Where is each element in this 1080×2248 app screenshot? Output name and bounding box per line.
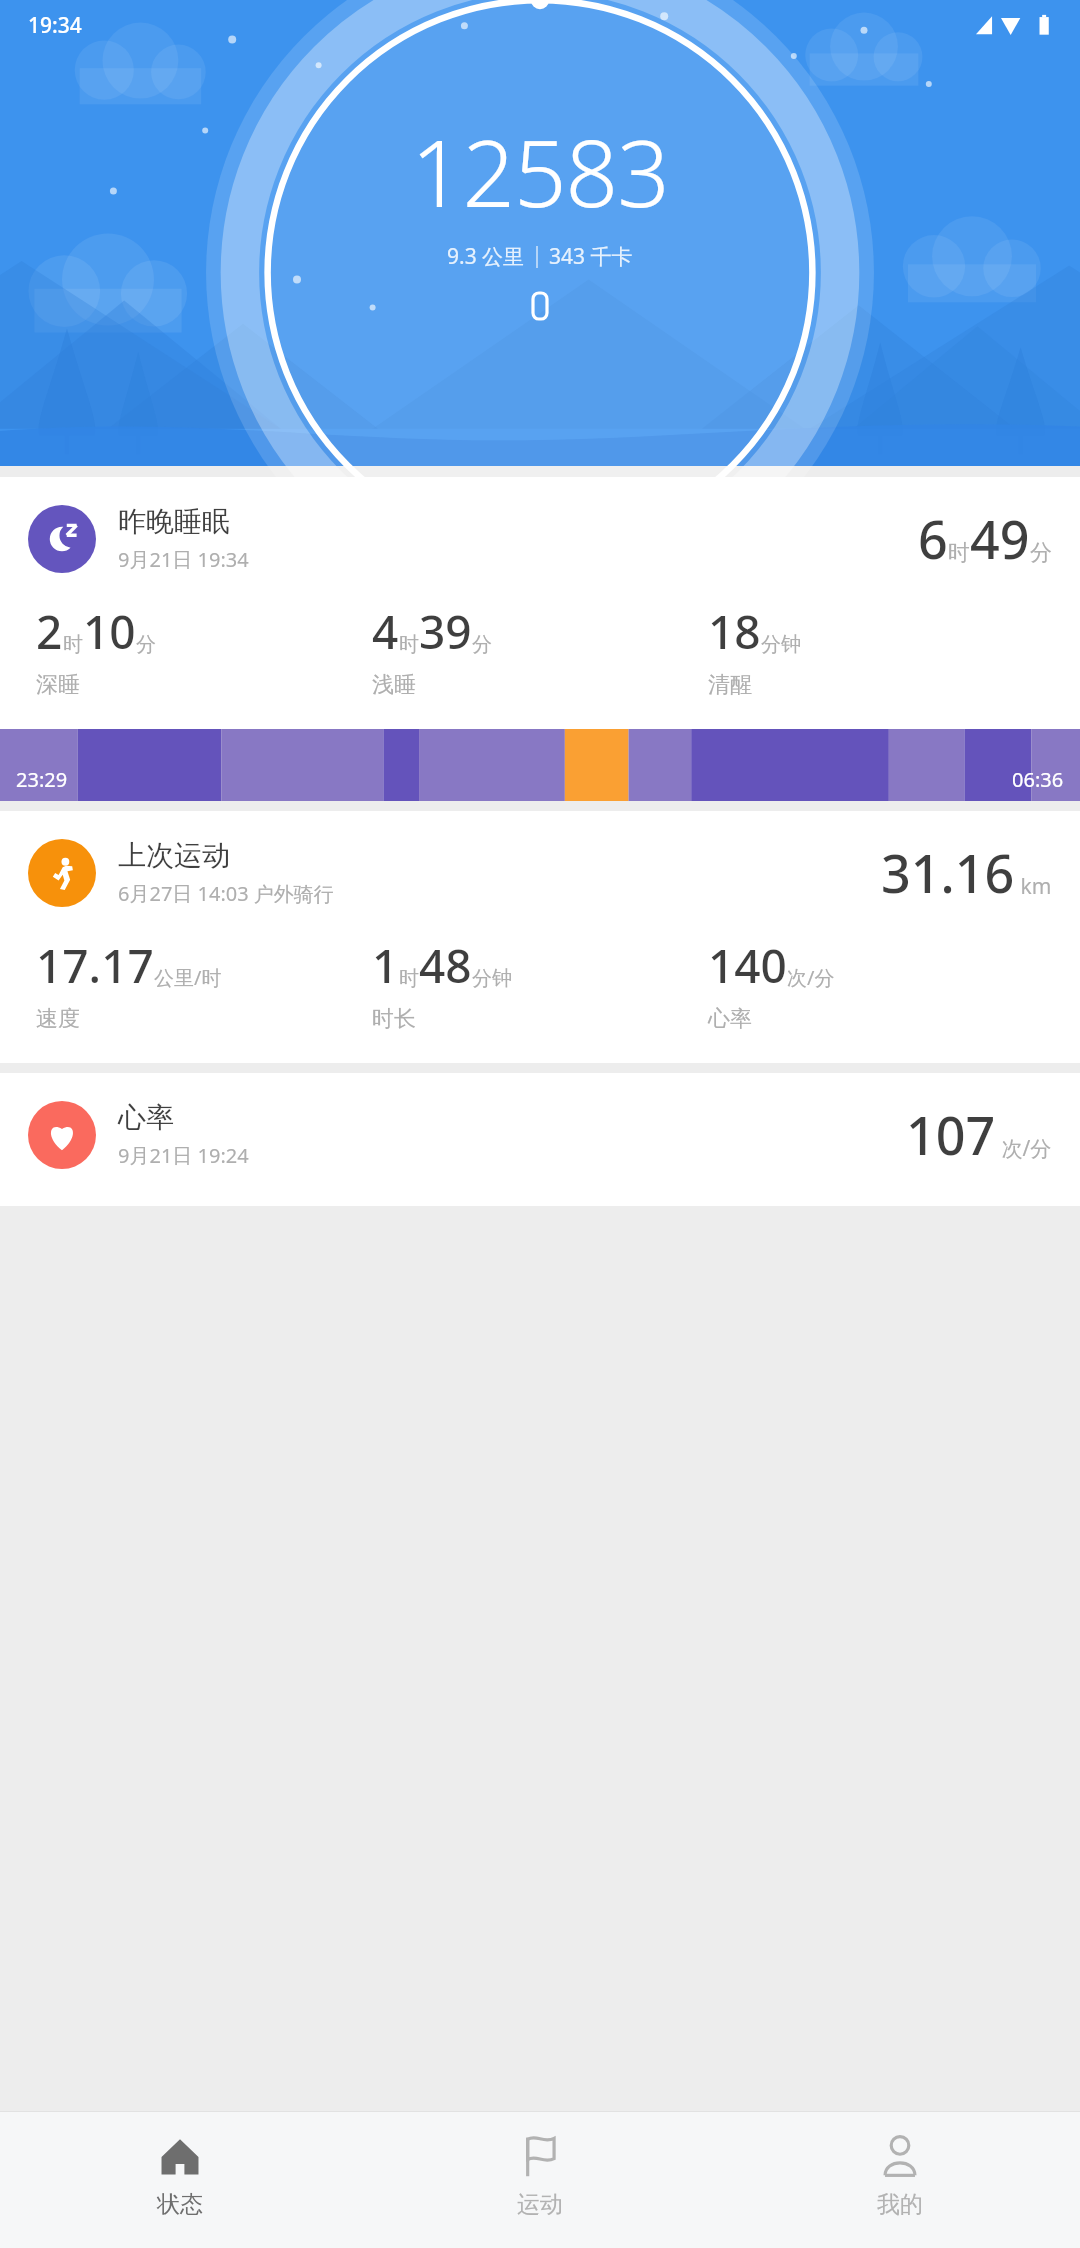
staticText: 清醒 xyxy=(708,671,752,699)
staticText: 运动 xyxy=(517,2190,563,2219)
staticText: 时 xyxy=(948,539,970,567)
staticText: 12583 xyxy=(411,109,669,234)
staticText: 时 xyxy=(399,632,419,657)
staticText: 1 xyxy=(372,934,399,997)
staticText: 6月27日 14:03 户外骑行 xyxy=(118,880,334,907)
staticText: 107 xyxy=(906,1099,996,1170)
staticText: 17.17 xyxy=(36,934,154,997)
staticText: 时 xyxy=(63,632,83,657)
staticText: 浅睡 xyxy=(372,671,416,699)
staticText: 9月21日 19:24 xyxy=(118,1142,249,1169)
staticText: 06:36 xyxy=(1012,766,1064,793)
staticText: 公里/时 xyxy=(154,964,222,991)
staticText: 分钟 xyxy=(761,632,801,657)
button[interactable]: 我的 xyxy=(720,2112,1080,2248)
staticText: 140 xyxy=(708,934,787,997)
staticText: 9.3 公里 xyxy=(447,242,525,271)
button[interactable]: 状态 xyxy=(0,2112,360,2248)
staticText: 48 xyxy=(419,934,472,997)
staticText: 2 xyxy=(36,600,63,663)
staticText: 19:34 xyxy=(28,11,82,40)
staticText: 次/分 xyxy=(787,964,835,991)
button[interactable]: 运动 xyxy=(360,2112,720,2248)
button[interactable]: 心率 xyxy=(0,1073,1080,1184)
button[interactable]: 上次运动 xyxy=(0,811,1080,922)
staticText: 23:29 xyxy=(16,766,68,793)
staticText: 分 xyxy=(136,632,156,657)
staticText: 343 千卡 xyxy=(549,242,633,271)
staticText: 分 xyxy=(472,632,492,657)
staticText: 分 xyxy=(1030,539,1052,567)
other: Connected band xyxy=(533,293,547,319)
staticText: 次/分 xyxy=(996,1134,1052,1163)
staticText: 10 xyxy=(83,600,136,663)
staticText: km xyxy=(1015,872,1052,901)
staticText: 深睡 xyxy=(36,671,80,699)
staticText: 我的 xyxy=(877,2190,923,2219)
staticText: 4 xyxy=(372,600,399,663)
staticText: 心率 xyxy=(118,1100,174,1135)
staticText: 昨晚睡眠 xyxy=(118,504,230,539)
button[interactable]: 昨晚睡眠 xyxy=(0,477,1080,588)
staticText: 心率 xyxy=(708,1005,752,1033)
staticText: 时长 xyxy=(372,1005,416,1033)
staticText: 39 xyxy=(419,600,472,663)
staticText: 9月21日 19:34 xyxy=(118,546,249,573)
staticText: 18 xyxy=(708,600,761,663)
staticText: 6 xyxy=(918,503,948,574)
staticText: 时 xyxy=(399,966,419,991)
staticText: 速度 xyxy=(36,1005,80,1033)
staticText: 49 xyxy=(970,503,1030,574)
staticText: 分钟 xyxy=(472,966,512,991)
staticText: 状态 xyxy=(157,2190,203,2219)
staticText: 上次运动 xyxy=(118,838,230,873)
staticText: 31.16 xyxy=(881,837,1015,908)
